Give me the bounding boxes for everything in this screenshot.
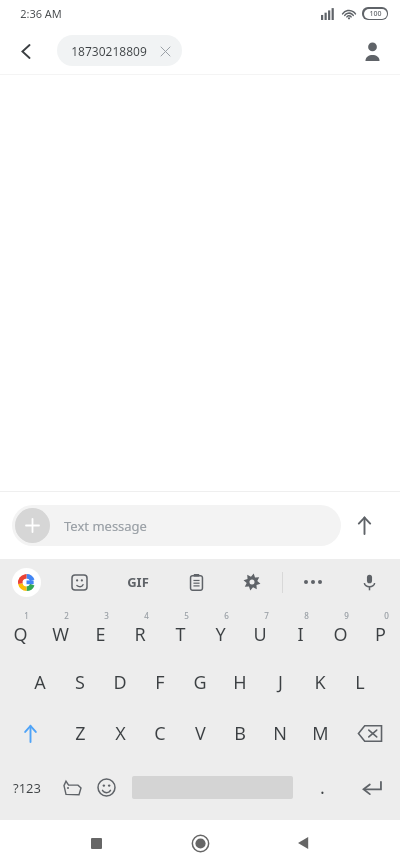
button[interactable]: T xyxy=(160,605,200,657)
button[interactable]: Voice input xyxy=(350,563,388,601)
staticText: 8 xyxy=(304,610,309,621)
button[interactable]: ?123 xyxy=(0,759,54,816)
staticText: I xyxy=(297,622,304,647)
button[interactable]: W xyxy=(40,605,80,657)
button[interactable]: Recents xyxy=(73,820,119,866)
staticText: 18730218809 xyxy=(71,43,147,59)
button[interactable]: J xyxy=(260,657,300,708)
staticText: G xyxy=(193,670,207,695)
button[interactable]: O xyxy=(320,605,360,657)
button[interactable]: D xyxy=(100,657,140,708)
button[interactable]: Attach xyxy=(12,505,341,546)
staticText: L xyxy=(355,670,365,695)
staticText: W xyxy=(52,622,69,647)
button[interactable]: Home xyxy=(177,820,223,866)
button[interactable]: M xyxy=(300,708,340,759)
button[interactable]: Shift xyxy=(0,708,60,759)
button[interactable]: Clipboard xyxy=(177,563,215,601)
staticText: GIF xyxy=(127,573,149,591)
button[interactable]: H xyxy=(220,657,260,708)
staticText: J xyxy=(278,670,283,695)
button[interactable]: Settings xyxy=(233,563,271,601)
staticText: 5 xyxy=(184,610,189,621)
button[interactable]: U xyxy=(240,605,280,657)
button[interactable]: R xyxy=(120,605,160,657)
button[interactable]: S xyxy=(60,657,100,708)
button[interactable]: Stickers xyxy=(54,759,89,816)
button[interactable]: N xyxy=(260,708,300,759)
button[interactable]: P xyxy=(360,605,400,657)
staticText: S xyxy=(75,670,85,695)
button[interactable]: E xyxy=(80,605,120,657)
staticText: 7 xyxy=(264,610,269,621)
button[interactable]: K xyxy=(300,657,340,708)
button[interactable]: Add contact xyxy=(352,31,392,71)
button[interactable]: Send xyxy=(341,502,388,549)
staticText: D xyxy=(113,670,127,695)
staticText: M xyxy=(312,721,329,746)
button[interactable]: Back xyxy=(6,31,46,71)
staticText: 2:36 AM xyxy=(20,6,62,21)
button[interactable]: Emoji xyxy=(89,759,124,816)
button[interactable]: G xyxy=(180,657,220,708)
button[interactable]: Stickers xyxy=(60,563,98,601)
staticText: C xyxy=(154,721,166,746)
button[interactable]: Z xyxy=(60,708,100,759)
staticText: . xyxy=(320,775,325,800)
button[interactable]: . xyxy=(301,759,343,816)
staticText: 4 xyxy=(144,610,149,621)
staticText: Text message xyxy=(64,517,147,535)
button[interactable]: More options xyxy=(294,563,332,601)
button[interactable]: Enter xyxy=(343,759,400,816)
staticText: X xyxy=(115,721,126,746)
staticText: K xyxy=(314,670,326,695)
staticText: 1 xyxy=(24,610,29,621)
button[interactable]: A xyxy=(20,657,60,708)
button[interactable]: I xyxy=(280,605,320,657)
button[interactable]: 18730218809 xyxy=(57,35,182,66)
button[interactable]: X xyxy=(100,708,140,759)
staticText: 9 xyxy=(344,610,349,621)
staticText: V xyxy=(195,721,206,746)
staticText: E xyxy=(95,622,106,647)
staticText: Z xyxy=(75,721,86,746)
button[interactable]: Q xyxy=(0,605,40,657)
staticText: U xyxy=(253,622,267,647)
staticText: ?123 xyxy=(13,779,41,797)
staticText: 6 xyxy=(224,610,229,621)
staticText: R xyxy=(134,622,146,647)
staticText: 2 xyxy=(64,610,69,621)
button[interactable]: Remove recipient xyxy=(156,42,174,60)
staticText: N xyxy=(273,721,287,746)
button[interactable]: Backspace xyxy=(340,708,400,759)
button[interactable]: Attach xyxy=(15,508,50,543)
staticText: H xyxy=(233,670,247,695)
staticText: Q xyxy=(13,622,28,647)
button[interactable]: F xyxy=(140,657,180,708)
staticText: B xyxy=(234,721,246,746)
staticText: Y xyxy=(215,622,226,647)
staticText: T xyxy=(175,622,186,647)
staticText: F xyxy=(155,670,165,695)
button[interactable]: C xyxy=(140,708,180,759)
button[interactable]: L xyxy=(340,657,380,708)
button[interactable]: B xyxy=(220,708,260,759)
staticText: O xyxy=(333,622,348,647)
staticText: 3 xyxy=(104,610,109,621)
button[interactable]: Y xyxy=(200,605,240,657)
staticText: 0 xyxy=(384,610,389,621)
button[interactable]: Back xyxy=(281,820,327,866)
staticText: A xyxy=(34,670,46,695)
button[interactable]: GIF xyxy=(117,561,159,603)
button[interactable]: Google xyxy=(12,568,41,597)
staticText: 100 xyxy=(369,9,382,19)
staticText: P xyxy=(375,622,386,647)
button[interactable]: V xyxy=(180,708,220,759)
